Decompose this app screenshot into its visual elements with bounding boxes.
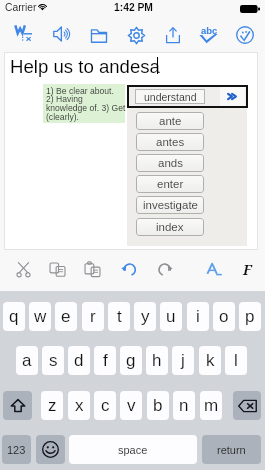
button[interactable]: k xyxy=(199,346,221,375)
staticText: y xyxy=(141,307,150,326)
staticText: z xyxy=(48,396,57,415)
staticText: 1) Be clear about. 2) Having knowledge o… xyxy=(46,86,126,122)
staticText: r xyxy=(90,307,96,326)
button[interactable]: y xyxy=(134,302,156,331)
staticText: e xyxy=(61,307,71,326)
button[interactable]: index xyxy=(136,218,204,236)
button[interactable]: t xyxy=(108,302,130,331)
staticText: k xyxy=(206,351,215,370)
staticText: v xyxy=(127,396,136,415)
staticText: d xyxy=(74,351,84,370)
staticText: m xyxy=(204,396,219,415)
button[interactable]: Shift xyxy=(3,391,32,420)
staticText: x xyxy=(75,396,84,415)
button[interactable]: Backspace xyxy=(233,391,261,420)
staticText: c xyxy=(101,396,110,415)
staticText: 1:42 PM xyxy=(114,2,153,14)
button[interactable]: Spell check xyxy=(191,18,225,50)
staticText: w xyxy=(34,307,47,326)
staticText: l xyxy=(234,351,238,370)
button[interactable]: o xyxy=(213,302,235,331)
button[interactable]: g xyxy=(120,346,142,375)
button[interactable]: r xyxy=(82,302,104,331)
button[interactable]: Copy xyxy=(43,255,71,283)
staticText: 123 xyxy=(7,444,26,456)
button[interactable]: b xyxy=(147,391,169,420)
staticText: g xyxy=(126,351,136,370)
button[interactable]: investigate xyxy=(136,196,204,214)
staticText: p xyxy=(245,307,255,326)
staticText: enter xyxy=(157,178,184,191)
button[interactable]: q xyxy=(3,302,25,331)
button[interactable]: Emoji xyxy=(36,435,65,464)
button[interactable]: m xyxy=(200,391,222,420)
staticText: Help us to andesa xyxy=(10,56,160,77)
button[interactable]: Bold xyxy=(233,255,261,283)
staticText: j xyxy=(181,351,185,370)
button[interactable]: e xyxy=(55,302,77,331)
staticText: ante xyxy=(159,115,182,128)
button[interactable]: Expand suggestions xyxy=(220,87,245,106)
button[interactable]: Undo xyxy=(115,255,143,283)
button[interactable]: w xyxy=(29,302,51,331)
button[interactable]: Read aloud xyxy=(45,18,79,50)
staticText: t xyxy=(117,307,122,326)
staticText: h xyxy=(152,351,162,370)
button[interactable]: Text color xyxy=(199,255,227,283)
button[interactable]: return xyxy=(202,435,261,464)
staticText: i xyxy=(196,307,200,326)
staticText: space xyxy=(118,444,148,456)
button[interactable]: z xyxy=(41,391,63,420)
button[interactable]: ands xyxy=(136,154,204,172)
staticText: a xyxy=(22,351,32,370)
staticText: antes xyxy=(156,136,185,149)
button[interactable]: Paste xyxy=(78,255,106,283)
button[interactable]: antes xyxy=(136,133,204,151)
button[interactable]: Verify xyxy=(228,19,262,51)
button[interactable]: Cut xyxy=(9,255,37,283)
button[interactable]: s xyxy=(42,346,64,375)
staticText: f xyxy=(103,351,108,370)
staticText: understand xyxy=(144,91,197,103)
staticText: u xyxy=(166,307,176,326)
button[interactable]: Dictionary xyxy=(6,17,40,49)
button[interactable]: a xyxy=(16,346,38,375)
button[interactable]: Folder xyxy=(82,19,116,51)
staticText: abc xyxy=(201,25,218,36)
button[interactable]: ante xyxy=(136,112,204,130)
staticText: b xyxy=(153,396,163,415)
button[interactable]: Share xyxy=(156,19,190,51)
staticText: o xyxy=(219,307,229,326)
staticText: index xyxy=(156,221,184,234)
button[interactable]: n xyxy=(173,391,195,420)
staticText: s xyxy=(49,351,58,370)
button[interactable]: i xyxy=(187,302,209,331)
staticText: investigate xyxy=(143,199,198,212)
button[interactable]: enter xyxy=(136,175,204,193)
button[interactable]: l xyxy=(225,346,247,375)
staticText: n xyxy=(179,396,189,415)
button[interactable]: h xyxy=(146,346,168,375)
button[interactable]: j xyxy=(172,346,194,375)
button[interactable]: c xyxy=(94,391,116,420)
staticText: F xyxy=(243,260,252,279)
button[interactable]: space xyxy=(69,435,197,464)
button[interactable]: 123 xyxy=(2,435,31,464)
staticText: ands xyxy=(158,157,183,170)
staticText: q xyxy=(9,307,19,326)
button[interactable]: u xyxy=(160,302,182,331)
button[interactable]: v xyxy=(120,391,142,420)
button[interactable]: Redo xyxy=(150,255,178,283)
button[interactable]: Settings xyxy=(119,19,153,51)
button[interactable]: f xyxy=(94,346,116,375)
button[interactable]: x xyxy=(68,391,90,420)
button[interactable]: p xyxy=(239,302,261,331)
staticText: Carrier xyxy=(5,2,37,14)
button[interactable]: d xyxy=(68,346,90,375)
staticText: return xyxy=(217,444,246,456)
